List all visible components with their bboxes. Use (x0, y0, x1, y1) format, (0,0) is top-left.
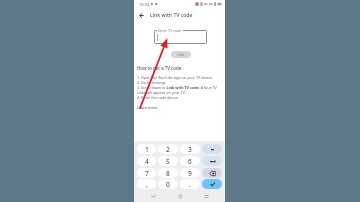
button[interactable]: 8 (158, 168, 178, 178)
button[interactable]: 6 (180, 156, 200, 166)
button[interactable]: , (137, 179, 156, 189)
staticText: 5 (166, 157, 170, 166)
staticText: How to get a TV code (137, 65, 182, 71)
button[interactable]: 2 (158, 144, 178, 154)
button[interactable]: 3 (180, 144, 200, 154)
staticText: 2 (166, 145, 170, 154)
button[interactable]: Back (146, 190, 160, 202)
staticText: 0 (166, 180, 170, 189)
button[interactable]: Space (202, 156, 222, 166)
staticText: , (146, 180, 148, 189)
button[interactable]: Enter (202, 179, 222, 189)
staticText: 8 (166, 169, 170, 178)
staticText: 3 (188, 145, 192, 154)
button[interactable]: 7 (137, 168, 156, 178)
button[interactable]: Recent apps (199, 190, 213, 202)
staticText: 1. Open the YouTube app on your TV devic… (137, 75, 214, 80)
staticText: Link with TV code (150, 12, 193, 19)
staticText: . (189, 180, 191, 189)
staticText: 2. Go to Settings. (137, 80, 167, 85)
staticText: 1 (145, 145, 149, 154)
button[interactable]: Learn more (137, 105, 158, 110)
staticText: 4. Enter the code above. (137, 95, 179, 100)
button[interactable]: Backspace (202, 168, 222, 178)
button[interactable]: 1 (137, 144, 156, 154)
button[interactable]: Dash (202, 144, 222, 154)
staticText: 9 (188, 169, 192, 178)
staticText: Link (177, 52, 185, 57)
button[interactable]: Back (137, 11, 146, 20)
staticText: 10:04 (139, 2, 150, 7)
button[interactable]: 4 (137, 156, 156, 166)
button[interactable]: 5 (158, 156, 178, 166)
staticText: Learn more (137, 105, 158, 110)
button[interactable]: 9 (180, 168, 200, 178)
staticText: 7 (145, 169, 149, 178)
button[interactable]: . (180, 179, 200, 189)
staticText: Enter TV code (158, 28, 182, 33)
button[interactable] (154, 30, 207, 44)
staticText: 3. Scroll down to Link with TV code. A b… (137, 85, 217, 95)
button[interactable]: Home (173, 190, 187, 202)
staticText: 6 (188, 157, 192, 166)
staticText: 4 (145, 157, 149, 166)
button[interactable]: Link (171, 51, 191, 58)
button[interactable]: 0 (158, 179, 178, 189)
